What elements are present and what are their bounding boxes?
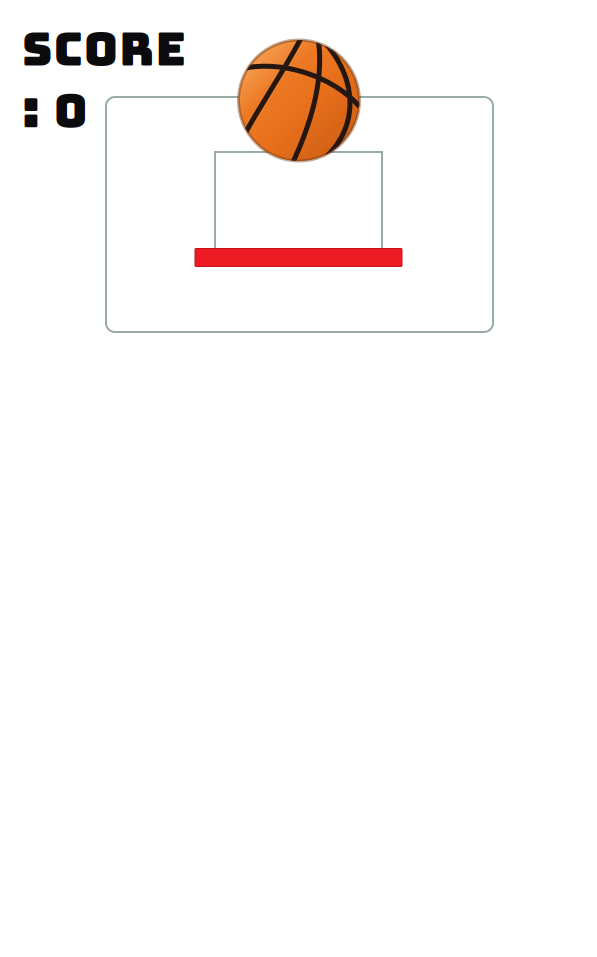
- staticText: SCORE : 0: [22, 18, 218, 141]
- button[interactable]: Shoot the basketball: [0, 0, 597, 957]
